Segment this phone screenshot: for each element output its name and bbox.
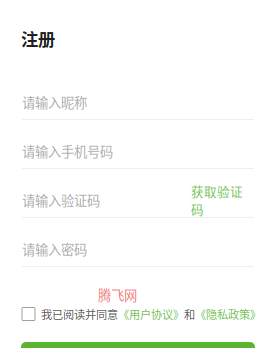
staticText: 请输入验证码 <box>22 190 100 210</box>
button[interactable]: 请输入密码 <box>22 225 254 273</box>
button[interactable]: 请输入验证码 <box>22 176 180 224</box>
staticText: 注册 <box>21 26 55 51</box>
button[interactable]: 请输入昵称 <box>22 78 254 126</box>
button[interactable]: 获取验证码 <box>180 176 254 224</box>
staticText: 请输入密码 <box>22 239 87 259</box>
staticText: 《隐私政策》 <box>195 306 261 322</box>
staticText: 获取验证码 <box>191 182 243 218</box>
staticText: 和 <box>184 306 195 322</box>
staticText: 腾飞网 <box>98 285 137 304</box>
staticText: 《用户协议》 <box>118 306 184 322</box>
staticText: 我已阅读并同意 <box>41 306 118 322</box>
staticText: 请输入手机号码 <box>22 141 113 161</box>
button[interactable]: 《用户协议》 <box>118 306 184 322</box>
button[interactable]: 注 册 <box>21 342 255 348</box>
button[interactable]: 《隐私政策》 <box>195 306 261 322</box>
button[interactable]: 我已阅读并同意 <box>22 306 118 322</box>
staticText: 请输入昵称 <box>22 92 87 112</box>
button[interactable]: 请输入手机号码 <box>22 127 254 175</box>
